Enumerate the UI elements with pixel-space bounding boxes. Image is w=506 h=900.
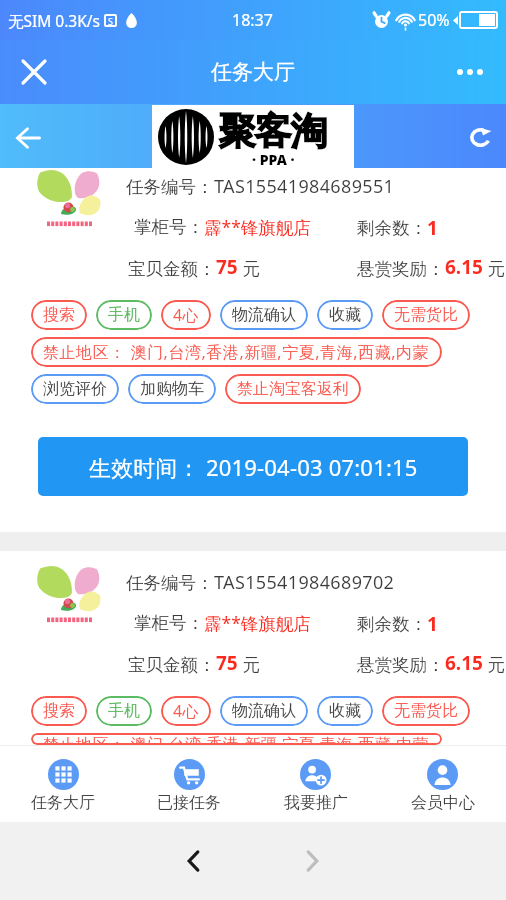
button[interactable]: 禁止淘宝客返利 (225, 374, 361, 404)
staticText: 生效时间： 2019-04-03 07:01:15 (89, 452, 418, 482)
button[interactable]: 手机 (96, 300, 152, 330)
button[interactable]: Back (164, 831, 224, 891)
staticText: TAS15541984689551 (214, 174, 395, 199)
staticText: 元 (238, 652, 261, 676)
staticText: 75 (216, 254, 238, 280)
button[interactable]: Back (6, 116, 50, 160)
button[interactable]: 搜索 (31, 300, 87, 330)
staticText: 已接任务 (157, 793, 221, 813)
staticText: 霹**锋旗舰店 (204, 611, 311, 635)
staticText: 物流确认 (232, 305, 296, 325)
staticText: 霹**锋旗舰店 (204, 215, 311, 239)
button[interactable]: 会员中心 (379, 746, 506, 822)
staticText: 元 (238, 256, 261, 280)
staticText: 禁止地区： 澳门,台湾,香港,新疆,宁夏,青海,西藏,内蒙 (43, 341, 430, 363)
staticText: 任务大厅 (211, 59, 295, 85)
staticText: 物流确认 (232, 701, 296, 721)
button[interactable]: 生效时间： 2019-04-03 07:01:15 (38, 437, 468, 496)
staticText: TAS15541984689702 (214, 570, 395, 595)
button[interactable]: 无需货比 (382, 300, 470, 330)
button[interactable]: 收藏 (317, 300, 373, 330)
button[interactable]: 手机 (96, 696, 152, 726)
button[interactable]: Close (12, 50, 56, 94)
staticText: 收藏 (329, 701, 361, 721)
button[interactable]: 4心 (161, 300, 211, 330)
staticText: 任务编号： (126, 572, 214, 594)
button[interactable]: 搜索 (31, 696, 87, 726)
staticText: 75 (216, 650, 238, 676)
staticText: 宝贝金额： (128, 654, 216, 676)
staticText: 6.15 (445, 254, 483, 280)
button[interactable]: 我要推广 (252, 746, 379, 822)
staticText: 任务大厅 (31, 793, 95, 813)
staticText: 50% (418, 9, 450, 31)
button[interactable]: More options (448, 50, 492, 94)
button[interactable]: 已接任务 (126, 746, 252, 822)
button[interactable]: Refresh (458, 115, 502, 159)
button[interactable]: 任务大厅 (0, 746, 126, 822)
staticText: 1 (427, 611, 438, 637)
staticText: 6.15 (445, 650, 483, 676)
staticText: 悬赏奖励： (357, 258, 445, 280)
staticText: 元 (483, 256, 506, 280)
staticText: 无SIM 0.3K/s (8, 10, 101, 31)
staticText: 无需货比 (394, 305, 458, 325)
staticText: 聚客淘 (219, 108, 327, 155)
staticText: 搜索 (43, 305, 75, 325)
staticText: 搜索 (43, 701, 75, 721)
staticText: 元 (483, 652, 506, 676)
staticText: 禁止淘宝客返利 (237, 379, 349, 399)
staticText: 剩余数： (357, 217, 427, 239)
staticText: 掌柜号： (134, 216, 204, 238)
button[interactable]: 收藏 (317, 696, 373, 726)
button[interactable]: Forward (282, 831, 342, 891)
staticText: 手机 (108, 305, 140, 325)
staticText: 任务编号： (126, 176, 214, 198)
button[interactable]: 浏览评价 (31, 374, 119, 404)
staticText: 悬赏奖励： (357, 654, 445, 676)
staticText: · PPA · (252, 150, 295, 167)
staticText: 会员中心 (411, 793, 475, 813)
staticText: 加购物车 (140, 379, 204, 399)
staticText: 浏览评价 (43, 379, 107, 399)
button[interactable]: 加购物车 (128, 374, 216, 404)
staticText: S (108, 15, 113, 27)
staticText: 1 (427, 215, 438, 241)
staticText: 无需货比 (394, 701, 458, 721)
staticText: 4心 (173, 700, 199, 722)
button[interactable]: 4心 (161, 696, 211, 726)
staticText: 18:37 (232, 9, 273, 31)
button[interactable]: 禁止地区： 澳门,台湾,香港,新疆,宁夏,青海,西藏,内蒙 (31, 337, 442, 367)
staticText: 掌柜号： (134, 612, 204, 634)
staticText: 我要推广 (284, 793, 348, 813)
button[interactable]: 物流确认 (220, 300, 308, 330)
staticText: 剩余数： (357, 613, 427, 635)
button[interactable]: 无需货比 (382, 696, 470, 726)
staticText: 宝贝金额： (128, 258, 216, 280)
staticText: 4心 (173, 304, 199, 326)
staticText: 手机 (108, 701, 140, 721)
staticText: 收藏 (329, 305, 361, 325)
button[interactable]: 物流确认 (220, 696, 308, 726)
staticText: 禁止地区： 澳门,台湾,香港,新疆,宁夏,青海,西藏,内蒙 (43, 733, 430, 745)
button[interactable]: 禁止地区： 澳门,台湾,香港,新疆,宁夏,青海,西藏,内蒙 (31, 733, 442, 745)
